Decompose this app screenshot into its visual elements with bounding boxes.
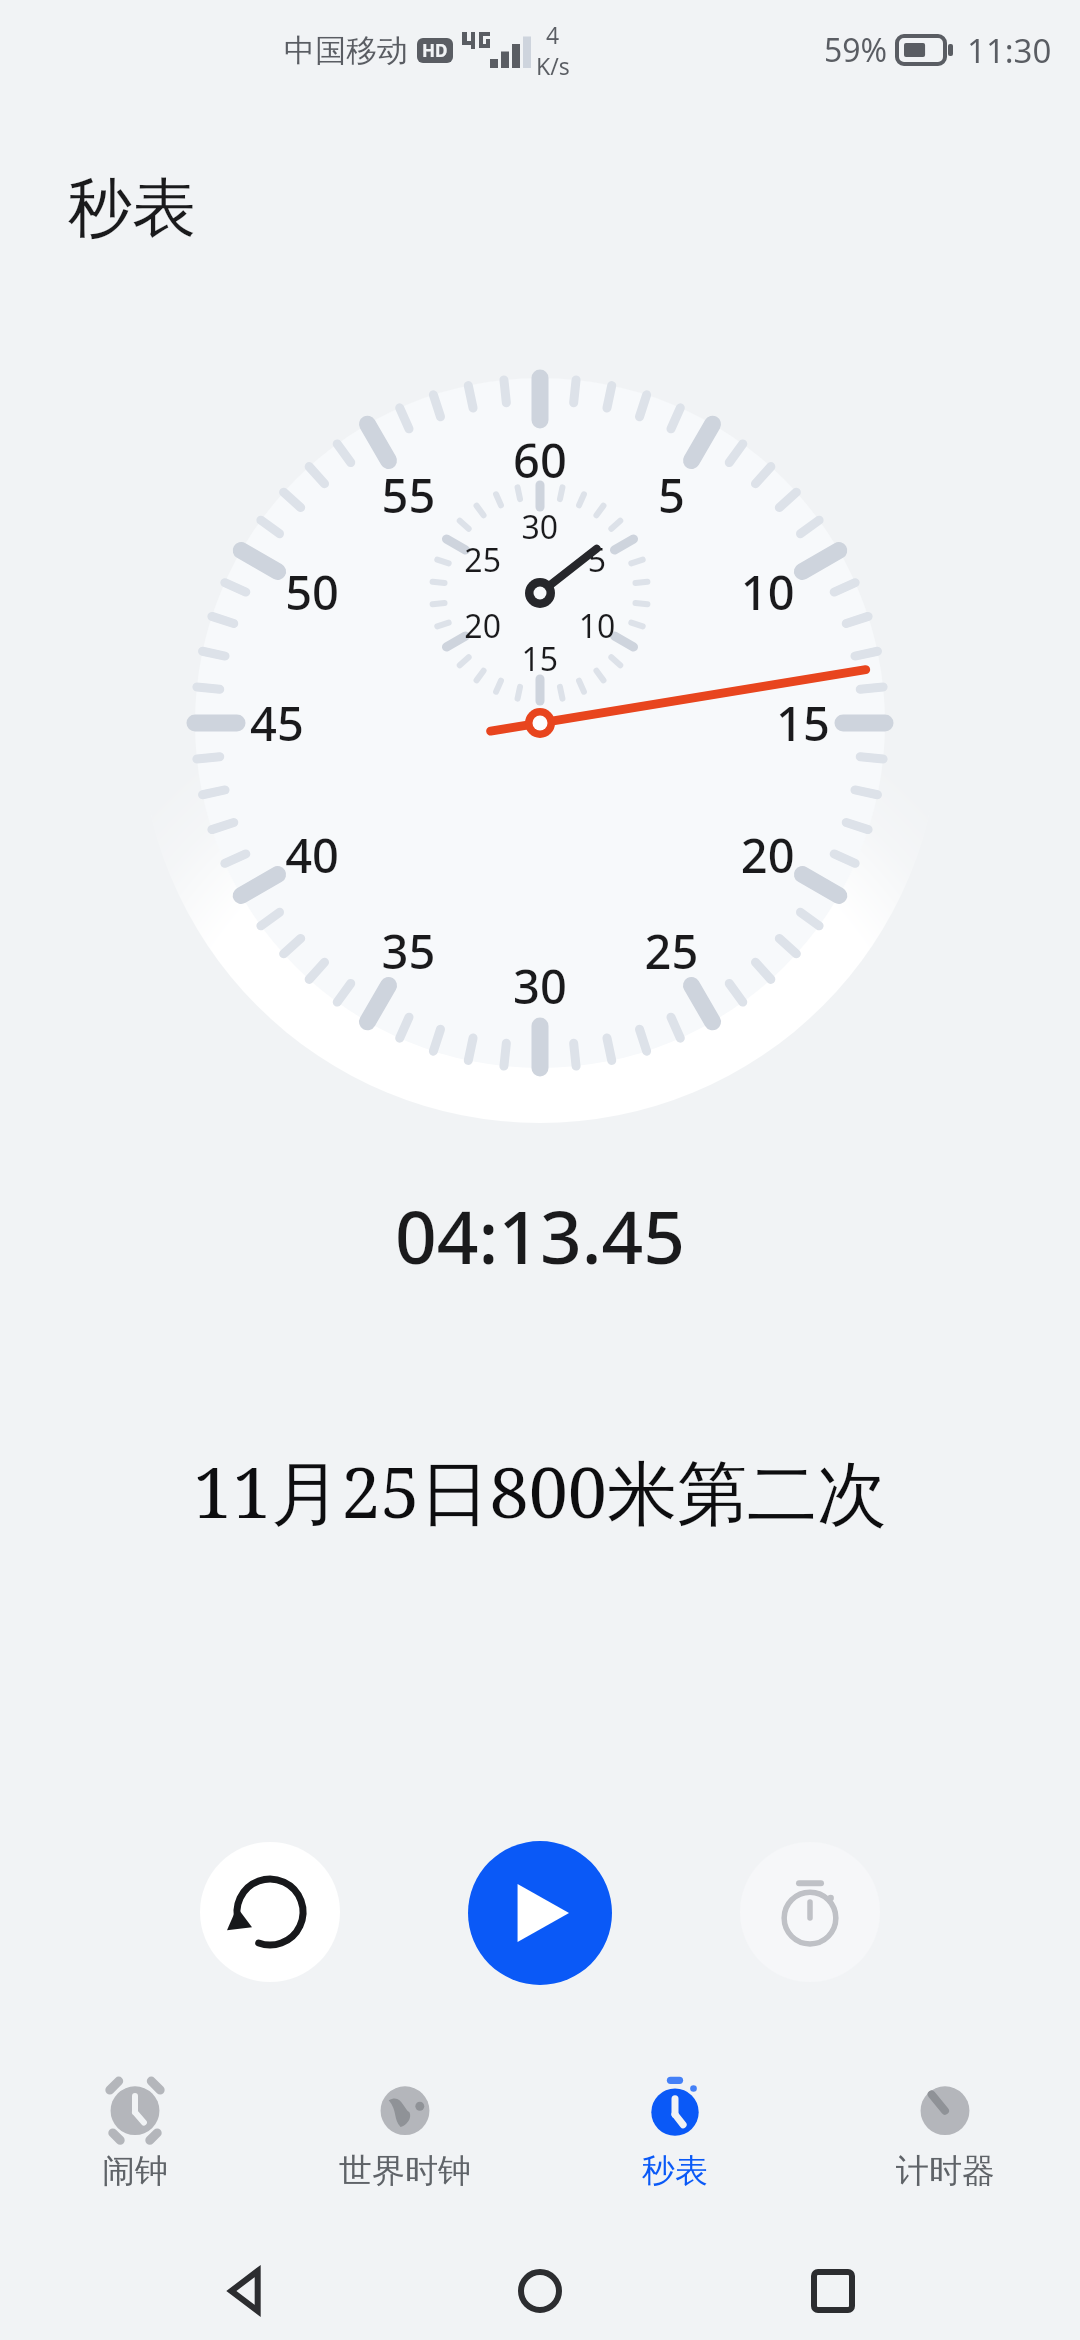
- button[interactable]: 秒表: [540, 2052, 810, 2242]
- staticText: 秒表: [642, 2150, 708, 2192]
- staticText: 11月25日800米第二次: [0, 1443, 1080, 1539]
- staticText: 11:30: [967, 28, 1052, 73]
- button[interactable]: Reset: [200, 1842, 340, 1982]
- button[interactable]: Back: [203, 2246, 293, 2336]
- staticText: 4: [546, 19, 560, 50]
- button[interactable]: Lap: [740, 1842, 880, 1982]
- staticText: 秒表: [68, 168, 196, 249]
- button[interactable]: Start: [468, 1841, 612, 1985]
- button[interactable]: Home: [495, 2246, 585, 2336]
- button[interactable]: 计时器: [810, 2052, 1080, 2242]
- staticText: 59%: [824, 28, 888, 72]
- staticText: 闹钟: [102, 2150, 168, 2192]
- button[interactable]: Recents: [788, 2246, 878, 2336]
- button[interactable]: 闹钟: [0, 2052, 270, 2242]
- staticText: 计时器: [896, 2150, 995, 2192]
- staticText: HD: [422, 39, 448, 62]
- staticText: 世界时钟: [339, 2150, 471, 2192]
- button[interactable]: 世界时钟: [270, 2052, 540, 2242]
- staticText: K/s: [536, 50, 570, 81]
- staticText: 中国移动: [284, 31, 408, 70]
- staticText: 04:13.45: [0, 1186, 1080, 1285]
